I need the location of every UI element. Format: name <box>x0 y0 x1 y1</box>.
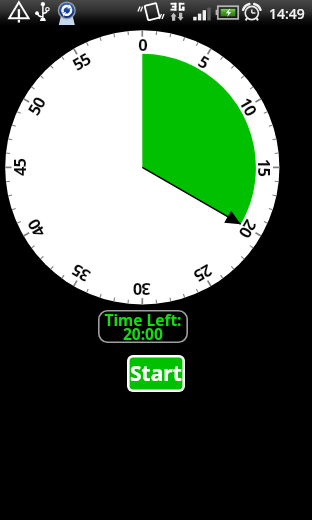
button[interactable] <box>98 310 188 343</box>
button[interactable] <box>127 355 185 392</box>
other: Timer dial, 20 minutes <box>0 0 312 520</box>
